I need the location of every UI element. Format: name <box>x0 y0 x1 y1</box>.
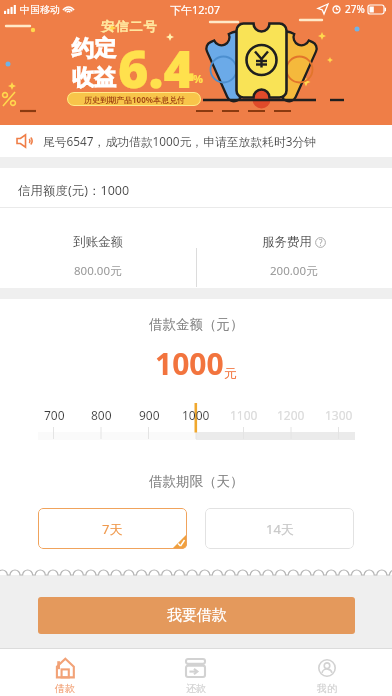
button[interactable]: 14天 <box>205 508 354 549</box>
staticText: 700 <box>44 407 65 423</box>
button[interactable]: 7天 <box>38 508 187 549</box>
staticText: 27% <box>345 2 365 16</box>
staticText: 14天 <box>266 520 294 538</box>
staticText: 1200 <box>277 407 305 423</box>
staticText: 6.4 <box>118 32 194 103</box>
button[interactable]: 到账金额 <box>0 208 196 279</box>
button[interactable]: 我的 <box>261 649 392 696</box>
staticText: ? <box>319 237 323 248</box>
staticText: 我要借款 <box>167 606 227 625</box>
staticText: 信用额度(元)：1000 <box>18 182 130 199</box>
staticText: 900 <box>139 407 160 423</box>
staticText: 800 <box>91 407 112 423</box>
staticText: 下午12:07 <box>170 2 221 17</box>
staticText: 1100 <box>230 407 258 423</box>
button[interactable]: 服务费用 <box>196 208 392 279</box>
staticText: 尾号6547，成功借款1000元，申请至放款耗时3分钟 <box>43 133 317 149</box>
staticText: 中国移动 <box>20 3 60 16</box>
staticText: 7天 <box>102 520 123 538</box>
staticText: 约定 <box>72 35 116 63</box>
button[interactable]: 还款 <box>130 649 261 696</box>
staticText: 服务费用 <box>262 234 312 250</box>
staticText: 1000 <box>182 407 210 423</box>
staticText: 1300 <box>325 407 353 423</box>
staticText: 我的 <box>317 682 337 695</box>
staticText: 历史到期产品100%本息兑付 <box>84 94 185 105</box>
staticText: 借款期限（天） <box>149 473 244 490</box>
button[interactable]: 服务费用说明 <box>315 237 326 248</box>
staticText: 200.00元 <box>270 263 318 279</box>
staticText: 借款金额（元） <box>149 316 244 333</box>
staticText: 元 <box>224 365 237 381</box>
staticText: 借款 <box>55 682 75 695</box>
staticText: 收益 <box>72 64 116 92</box>
staticText: 到账金额 <box>73 234 123 250</box>
button[interactable]: 借款 <box>0 649 130 696</box>
staticText: % <box>193 71 203 86</box>
staticText: 800.00元 <box>74 263 122 279</box>
staticText: 1000 <box>155 343 224 384</box>
button[interactable]: 我要借款 <box>38 597 355 634</box>
staticText: 安信二号 <box>101 18 158 34</box>
staticText: 还款 <box>186 682 206 695</box>
